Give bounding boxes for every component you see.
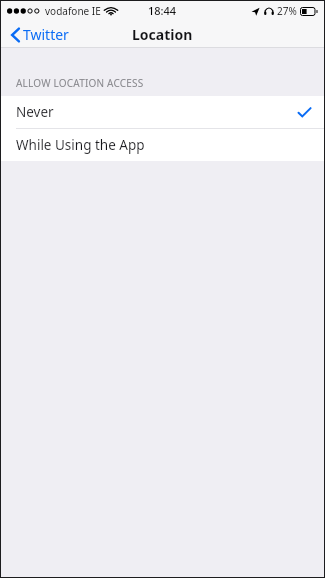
button[interactable]: Twitter (1, 22, 77, 47)
other: Selected (298, 107, 311, 118)
staticText: ALLOW LOCATION ACCESS (16, 76, 144, 90)
staticText: vodafone IE (45, 4, 101, 18)
staticText: Never (16, 103, 54, 121)
staticText: Twitter (23, 25, 69, 44)
staticText: 27% (277, 4, 297, 18)
staticText: While Using the App (16, 136, 145, 154)
button[interactable]: Never (1, 96, 324, 128)
button[interactable]: While Using the App (1, 129, 324, 161)
staticText: 18:44 (148, 3, 177, 18)
staticText: Location (132, 25, 193, 44)
